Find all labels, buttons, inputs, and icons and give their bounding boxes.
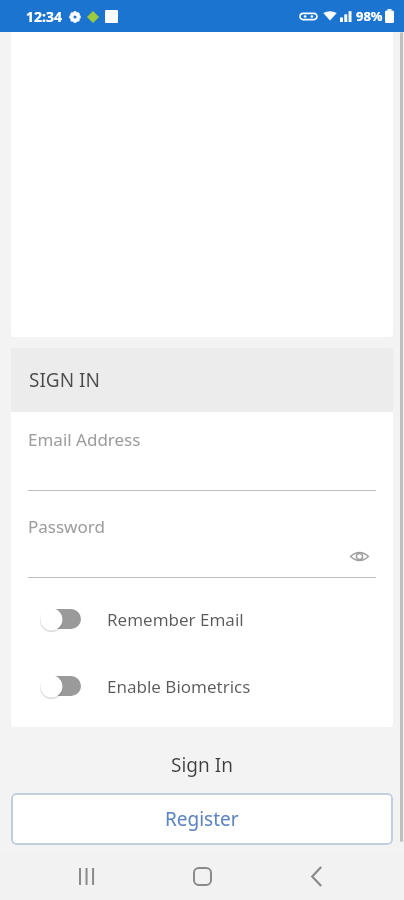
staticText: Enable Biometrics (107, 675, 251, 698)
button[interactable]: Remember Email (11, 602, 393, 636)
staticText: 98% (356, 7, 383, 25)
button[interactable]: Enable Biometrics (11, 669, 393, 703)
staticText: Password (28, 515, 105, 538)
button[interactable]: Show password (342, 539, 376, 573)
staticText: SIGN IN (29, 367, 100, 393)
staticText: 12:34 (26, 7, 62, 26)
staticText: Sign In (171, 752, 233, 778)
button[interactable]: Back (289, 852, 345, 900)
button[interactable]: Register (11, 793, 393, 845)
staticText: Remember Email (107, 608, 244, 631)
staticText: Register (165, 806, 239, 832)
button[interactable]: Recents (59, 852, 115, 900)
button[interactable]: Sign In (11, 737, 393, 793)
button[interactable]: Home (174, 852, 230, 900)
staticText: Email Address (28, 428, 141, 451)
